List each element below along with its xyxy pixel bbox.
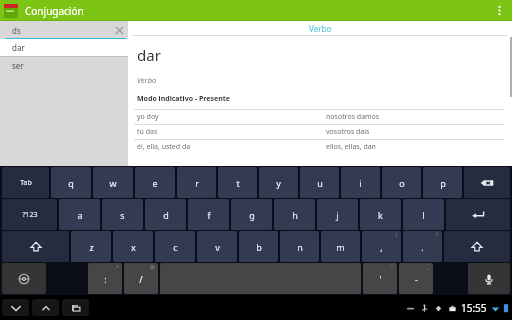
button[interactable]: m xyxy=(321,231,360,262)
button[interactable]: Voice input xyxy=(468,263,510,294)
button[interactable]: t xyxy=(218,167,257,198)
staticText: - xyxy=(415,273,418,285)
button[interactable]: e xyxy=(135,167,175,198)
button[interactable]: j xyxy=(317,199,358,230)
button[interactable]: s xyxy=(102,199,143,230)
button[interactable]: / xyxy=(124,263,158,294)
staticText: / xyxy=(139,273,143,285)
button[interactable]: i xyxy=(341,167,380,198)
staticText: o xyxy=(399,177,405,189)
button[interactable]: App icon xyxy=(3,3,19,19)
staticText: dar xyxy=(137,45,161,65)
staticText: r xyxy=(195,177,199,189)
staticText: ? xyxy=(436,232,439,239)
staticText: yo doy xyxy=(137,112,320,122)
button[interactable]: g xyxy=(231,199,272,230)
staticText: Verbo xyxy=(137,75,157,85)
staticText: f xyxy=(207,209,211,221)
button[interactable]: yo doy xyxy=(128,110,512,124)
staticText: c xyxy=(173,241,178,253)
button[interactable]: - xyxy=(399,263,433,294)
button[interactable]: , xyxy=(362,231,401,262)
button[interactable]: Change keyboard xyxy=(2,263,46,294)
staticText: Tab xyxy=(20,178,32,188)
button[interactable]: dar xyxy=(0,39,128,56)
button[interactable]: f xyxy=(188,199,229,230)
button[interactable]: o xyxy=(382,167,421,198)
button[interactable]: v xyxy=(197,231,237,262)
button[interactable]: Shift xyxy=(444,231,510,262)
button[interactable]: n xyxy=(280,231,319,262)
staticText: vosotros dais xyxy=(326,127,512,137)
staticText: él, ella, usted da xyxy=(137,142,320,152)
staticText: @ xyxy=(150,264,155,271)
button[interactable]: ' xyxy=(363,263,397,294)
staticText: Verbo xyxy=(309,23,332,34)
button[interactable]: y xyxy=(259,167,298,198)
button[interactable]: u xyxy=(300,167,339,198)
button[interactable]: l xyxy=(403,199,444,230)
button[interactable]: x xyxy=(113,231,153,262)
staticText: h xyxy=(292,209,298,221)
staticText: ! xyxy=(396,232,398,239)
button[interactable]: Back xyxy=(2,299,29,316)
button[interactable]: h xyxy=(274,199,315,230)
staticText: " xyxy=(391,264,394,271)
staticText: ?123 xyxy=(22,210,38,220)
button[interactable]: Clear search xyxy=(112,23,126,37)
staticText: q xyxy=(68,177,74,189)
button[interactable]: a xyxy=(59,199,100,230)
staticText: Conjugación xyxy=(25,4,84,18)
button[interactable]: él, ella, usted da xyxy=(128,140,512,154)
button[interactable]: : xyxy=(88,263,122,294)
staticText: . xyxy=(421,241,424,253)
staticText: s xyxy=(120,209,125,221)
staticText: _ xyxy=(427,264,430,271)
button[interactable]: ser xyxy=(0,57,128,74)
button[interactable]: z xyxy=(71,231,111,262)
button[interactable]: Verbo xyxy=(128,21,512,35)
staticText: tú das xyxy=(137,127,320,137)
button[interactable]: . xyxy=(403,231,442,262)
button[interactable]: c xyxy=(155,231,195,262)
staticText: : xyxy=(104,273,107,285)
staticText: b xyxy=(256,241,262,253)
staticText: ds xyxy=(12,25,21,36)
button[interactable]: Shift xyxy=(2,231,69,262)
staticText: w xyxy=(109,177,117,189)
staticText: n xyxy=(297,241,303,253)
staticText: ser xyxy=(12,60,24,71)
button[interactable]: d xyxy=(145,199,186,230)
button[interactable]: Tab xyxy=(2,167,49,198)
staticText: dar xyxy=(12,42,25,53)
button[interactable]: ?123 xyxy=(2,199,57,230)
staticText: z xyxy=(89,241,94,253)
staticText: ' xyxy=(379,273,382,285)
staticText: i xyxy=(359,177,362,189)
button[interactable]: Home xyxy=(32,299,59,316)
staticText: p xyxy=(440,177,446,189)
button[interactable]: More options xyxy=(492,0,506,21)
staticText: 15:55 xyxy=(461,301,487,315)
staticText: d xyxy=(163,209,169,221)
button[interactable]: ds xyxy=(5,21,126,39)
button[interactable]: Backspace xyxy=(464,167,510,198)
staticText: u xyxy=(317,177,323,189)
button[interactable]: r xyxy=(177,167,216,198)
staticText: e xyxy=(152,177,158,189)
button[interactable]: tú das xyxy=(128,125,512,139)
staticText: l xyxy=(422,209,425,221)
staticText: k xyxy=(378,209,383,221)
staticText: ellos, ellas, dan xyxy=(326,142,512,152)
staticText: t xyxy=(236,177,240,189)
staticText: m xyxy=(336,241,345,253)
staticText: y xyxy=(276,177,281,189)
button[interactable]: b xyxy=(239,231,278,262)
button[interactable]: Enter xyxy=(446,199,510,230)
button[interactable]: w xyxy=(93,167,133,198)
button[interactable]: k xyxy=(360,199,401,230)
button[interactable]: Recent apps xyxy=(62,299,89,316)
button[interactable]: p xyxy=(423,167,462,198)
button[interactable]: q xyxy=(51,167,91,198)
